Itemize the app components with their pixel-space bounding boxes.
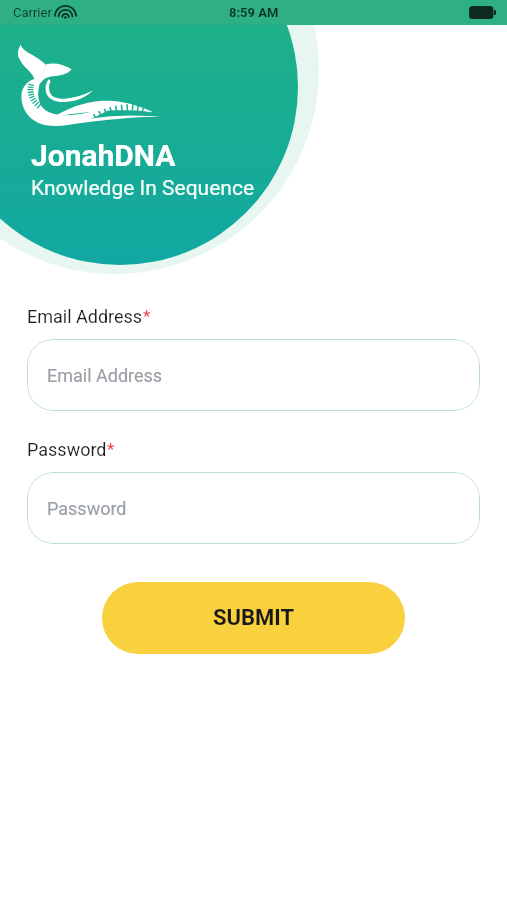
staticText: JonahDNA (31, 138, 176, 173)
staticText: Carrier (13, 5, 52, 20)
staticText: Password (47, 498, 127, 519)
button[interactable]: Email Address (27, 339, 480, 411)
other: JonahDNA logo (14, 44, 166, 128)
button[interactable]: Password (27, 472, 480, 544)
staticText: Email Address (47, 365, 163, 386)
staticText: Password (27, 439, 107, 460)
staticText: Email Address (27, 306, 143, 327)
button[interactable]: SUBMIT (102, 582, 405, 654)
staticText: * (107, 439, 115, 459)
staticText: Knowledge In Sequence (31, 176, 255, 201)
staticText: * (143, 306, 151, 326)
staticText: 8:59 AM (229, 5, 279, 20)
staticText: SUBMIT (213, 605, 295, 631)
